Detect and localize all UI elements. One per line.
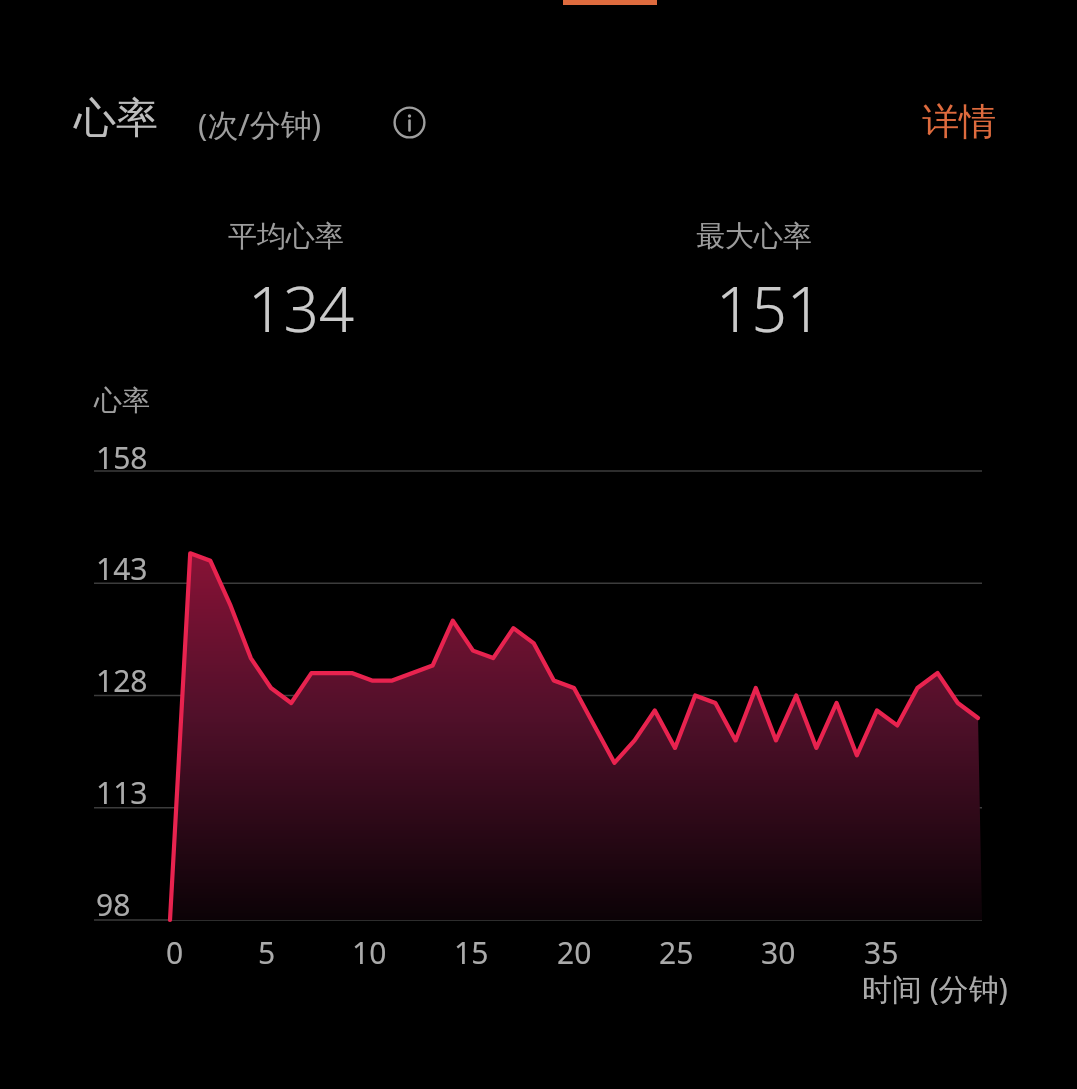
staticText: 20 (557, 932, 592, 973)
button[interactable]: 心率 (74, 92, 158, 145)
staticText: 134 (248, 266, 355, 350)
staticText: 158 (96, 437, 148, 478)
staticText: 10 (352, 932, 387, 973)
staticText: 35 (864, 932, 899, 973)
staticText: (次/分钟) (198, 103, 322, 145)
staticText: 心率 (94, 383, 150, 418)
staticText: 113 (96, 772, 148, 813)
button[interactable]: 详情 (922, 98, 996, 145)
staticText: 25 (659, 932, 694, 973)
staticText: 30 (761, 932, 796, 973)
staticText: 平均心率 (228, 218, 344, 255)
staticText: 心率 (74, 92, 158, 145)
staticText: 详情 (922, 98, 996, 145)
staticText: 5 (258, 932, 276, 973)
staticText: 时间 (分钟) (862, 968, 1008, 1009)
staticText: 0 (166, 932, 184, 973)
staticText: 98 (96, 884, 131, 925)
staticText: 128 (96, 660, 148, 701)
staticText: 最大心率 (696, 218, 812, 255)
button[interactable]: Info (393, 106, 426, 139)
staticText: 143 (96, 548, 148, 589)
staticText: 151 (716, 266, 823, 350)
staticText: 15 (454, 932, 489, 973)
